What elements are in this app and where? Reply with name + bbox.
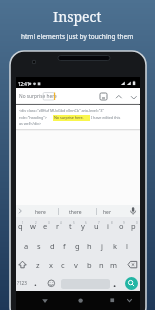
button[interactable] xyxy=(16,88,140,104)
staticText: 7 xyxy=(98,221,100,225)
button[interactable]: k xyxy=(109,239,121,253)
button[interactable]: m xyxy=(108,258,120,272)
button[interactable]: l xyxy=(121,239,133,253)
staticText: z xyxy=(36,260,40,270)
button[interactable]: d xyxy=(46,239,58,253)
button[interactable] xyxy=(104,293,120,307)
staticText: here xyxy=(35,209,46,216)
staticText: 8 xyxy=(111,221,113,225)
staticText: 6 xyxy=(85,221,87,225)
staticText: o xyxy=(119,221,124,231)
staticText: 5 xyxy=(73,221,75,225)
staticText: No surprise here. xyxy=(54,115,84,120)
staticText: q xyxy=(18,221,23,231)
staticText: 12:41 xyxy=(18,81,30,87)
button[interactable]: z xyxy=(32,258,44,272)
button[interactable]: j xyxy=(96,239,108,253)
staticText: p xyxy=(131,221,136,231)
staticText: f xyxy=(63,241,66,251)
button[interactable]: w xyxy=(27,219,39,233)
staticText: s xyxy=(37,241,41,251)
button[interactable]: g xyxy=(71,239,83,253)
staticText: m xyxy=(110,260,118,270)
staticText: role="heading"> xyxy=(19,115,47,120)
staticText: <div class="zBHuf MUxGbd v0nnCb" aria-le… xyxy=(19,108,104,113)
button[interactable]: n xyxy=(95,258,107,272)
staticText: No surprise here xyxy=(19,93,57,100)
button[interactable]: r xyxy=(52,219,64,233)
staticText: b xyxy=(87,260,92,270)
staticText: a xyxy=(24,241,29,251)
staticText: r xyxy=(56,221,60,231)
staticText: 2 xyxy=(35,221,37,225)
button[interactable]: b xyxy=(83,258,95,272)
staticText: t xyxy=(69,221,72,231)
button[interactable]: e xyxy=(39,219,51,233)
staticText: there xyxy=(69,209,82,216)
staticText: 3 xyxy=(48,221,50,225)
staticText: 1 xyxy=(22,221,24,225)
button[interactable]: p xyxy=(127,219,139,233)
staticText: ?123 xyxy=(17,280,27,286)
button[interactable] xyxy=(73,293,89,307)
button[interactable] xyxy=(122,293,138,307)
staticText: w xyxy=(30,221,36,231)
button[interactable]: y xyxy=(77,219,89,233)
button[interactable]: f xyxy=(58,239,70,253)
button[interactable]: o xyxy=(115,219,127,233)
button[interactable] xyxy=(37,293,53,307)
staticText: 4 xyxy=(60,221,62,225)
staticText: i xyxy=(107,221,109,231)
button[interactable]: v xyxy=(70,258,82,272)
button[interactable]: h xyxy=(83,239,95,253)
staticText: html elements just by touching them xyxy=(21,32,134,41)
staticText: I have edited this xyxy=(91,115,121,120)
staticText: u xyxy=(94,221,99,231)
staticText: e xyxy=(43,221,48,231)
staticText: as well</div> xyxy=(19,121,41,126)
staticText: d xyxy=(50,241,55,251)
staticText: v xyxy=(74,260,78,270)
staticText: h xyxy=(87,241,92,251)
button[interactable]: there xyxy=(63,207,87,218)
button[interactable] xyxy=(125,277,138,290)
staticText: l xyxy=(126,241,128,251)
staticText: Inspect xyxy=(53,7,102,26)
button[interactable]: ?123 xyxy=(14,277,30,289)
staticText: her xyxy=(103,209,111,216)
button[interactable]: c xyxy=(57,258,69,272)
staticText: c xyxy=(61,260,65,270)
staticText: n xyxy=(99,260,104,270)
staticText: g xyxy=(75,241,80,251)
button[interactable]: u xyxy=(90,219,102,233)
button[interactable]: s xyxy=(33,239,45,253)
staticText: 0 xyxy=(136,221,138,225)
staticText: x xyxy=(49,260,53,270)
button[interactable]: her xyxy=(95,207,119,218)
button[interactable]: here xyxy=(28,207,52,218)
button[interactable]: x xyxy=(45,258,57,272)
button[interactable]: t xyxy=(64,219,76,233)
staticText: 9 xyxy=(123,221,125,225)
button[interactable]: a xyxy=(20,239,32,253)
button[interactable]: q xyxy=(14,219,26,233)
staticText: y xyxy=(81,221,85,231)
staticText: j xyxy=(101,241,103,251)
button[interactable]: i xyxy=(102,219,114,233)
staticText: k xyxy=(113,241,118,251)
